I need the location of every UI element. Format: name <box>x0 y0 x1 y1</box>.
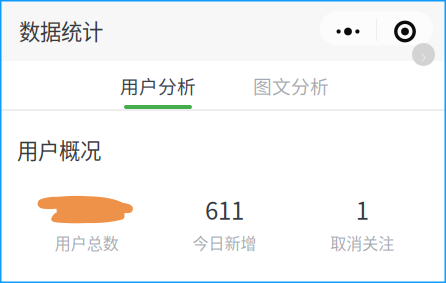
button[interactable]: 图文分析 <box>246 61 336 109</box>
button[interactable]: More <box>320 11 376 45</box>
staticText: 数据统计 <box>19 15 103 46</box>
staticText: 用户总数 <box>55 231 119 254</box>
staticText: 611 <box>205 192 244 227</box>
button[interactable]: Close mini program <box>377 11 433 45</box>
staticText: 用户概况 <box>17 134 101 165</box>
staticText: 用户分析 <box>120 72 196 99</box>
staticText: › <box>420 40 426 69</box>
staticText: 1 <box>356 192 369 227</box>
button[interactable]: Next <box>412 43 435 66</box>
button[interactable]: 用户分析 <box>113 61 203 109</box>
staticText: 取消关注 <box>330 231 394 254</box>
staticText: 图文分析 <box>253 72 329 99</box>
staticText: 今日新增 <box>192 231 256 254</box>
